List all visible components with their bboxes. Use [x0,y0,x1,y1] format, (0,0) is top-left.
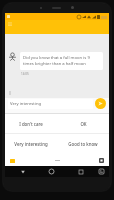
button[interactable]: Switch input method [95,166,107,177]
button[interactable]: I don't care [5,114,57,133]
button[interactable]: Backspace [98,157,105,164]
other: Bot avatar [8,52,17,61]
staticText: OK [80,121,87,127]
button[interactable]: Very interesting [8,99,93,109]
staticText: 14:05 [21,72,29,76]
staticText: Did you know that a full moon is 9 times… [23,55,100,67]
button[interactable]: OK [57,114,109,133]
staticText: Very interesting [14,141,48,147]
button[interactable]: Keyboard [9,157,16,164]
button[interactable]: Navigate up [7,21,13,27]
button[interactable]: Recent apps [66,166,95,177]
button[interactable]: Send [95,98,106,109]
button[interactable]: Back [9,166,37,177]
button[interactable]: Very interesting [5,134,57,154]
staticText: Very interesting [10,101,42,107]
staticText: Good to know [68,141,98,147]
button[interactable]: Space [53,156,61,164]
button[interactable]: Good to know [57,134,109,154]
button[interactable]: Home [37,166,66,177]
button[interactable]: Did you know that a full moon is 9 times… [20,52,103,70]
staticText: I don't care [19,121,43,127]
